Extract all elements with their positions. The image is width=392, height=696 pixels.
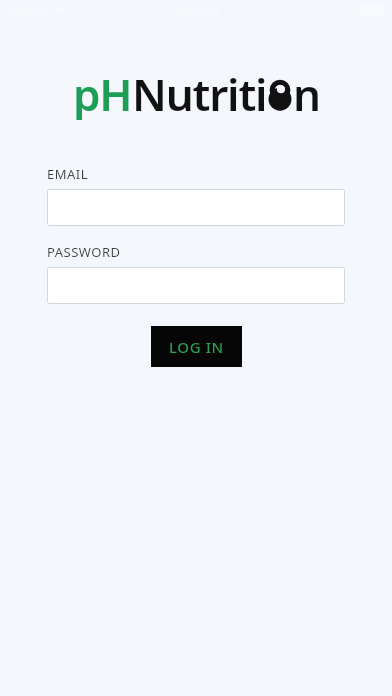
button[interactable]: EMAIL	[47, 189, 345, 226]
staticText: n	[293, 64, 320, 120]
button[interactable]: PASSWORD	[47, 267, 345, 304]
staticText: pH	[73, 64, 132, 120]
staticText: EMAIL	[47, 165, 89, 183]
button[interactable]: LOG IN	[151, 326, 242, 367]
staticText: PASSWORD	[47, 243, 121, 261]
staticText: LOG IN	[169, 337, 224, 357]
staticText: Nutriti	[132, 64, 267, 120]
